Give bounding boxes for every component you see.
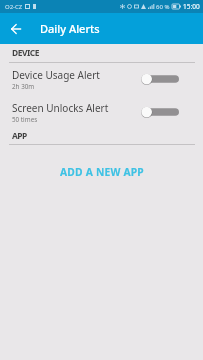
staticText: 15:00 (183, 2, 200, 11)
staticText: APP (12, 130, 27, 141)
staticText: O2-CZ (5, 3, 23, 11)
staticText: 60 % (156, 3, 170, 11)
staticText: 2h 30m (12, 82, 35, 91)
button[interactable]: Device Usage Alert (0, 65, 203, 97)
button[interactable]: ADD A NEW APP (0, 163, 203, 181)
button[interactable]: Toggle alert (141, 72, 185, 86)
staticText: DEVICE (12, 47, 39, 58)
staticText: ADD A NEW APP (60, 165, 144, 179)
staticText: Screen Unlocks Alert (12, 101, 109, 115)
staticText: Daily Alerts (40, 21, 100, 36)
button[interactable]: Back (1, 14, 31, 44)
staticText: Device Usage Alert (12, 68, 100, 82)
button[interactable]: Screen Unlocks Alert (0, 98, 203, 130)
staticText: 50 times (12, 115, 38, 124)
button[interactable]: Toggle alert (141, 105, 185, 119)
